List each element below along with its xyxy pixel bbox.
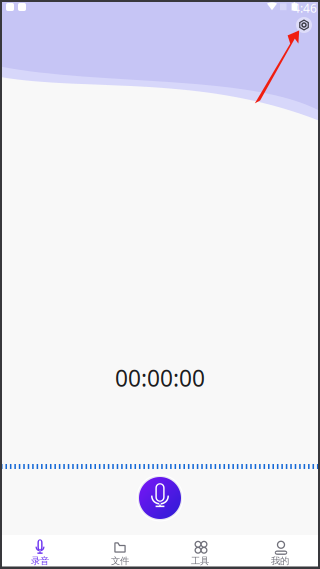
button[interactable]: 我的 xyxy=(240,535,320,566)
button[interactable]: 工具 xyxy=(160,535,240,566)
staticText: 工具 xyxy=(191,555,209,567)
button[interactable]: Record xyxy=(136,474,183,521)
button[interactable]: 文件 xyxy=(80,535,160,566)
button[interactable]: Settings xyxy=(296,17,312,33)
staticText: 00:00:00 xyxy=(115,363,205,393)
staticText: 我的 xyxy=(271,555,289,567)
staticText: 录音 xyxy=(31,555,49,567)
staticText: 4:46 xyxy=(293,0,317,16)
staticText: 文件 xyxy=(111,555,129,567)
button[interactable]: 录音 xyxy=(0,535,80,566)
